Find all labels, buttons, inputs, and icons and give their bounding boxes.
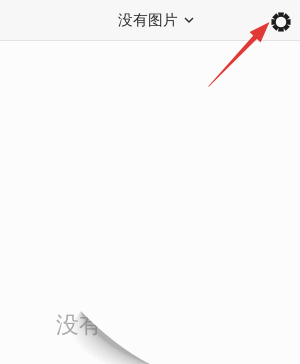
button[interactable]: 没有图片 <box>112 3 200 37</box>
staticText: 没有 <box>56 311 102 339</box>
button[interactable]: Settings <box>264 5 298 39</box>
staticText: 没有图片 <box>118 11 178 29</box>
